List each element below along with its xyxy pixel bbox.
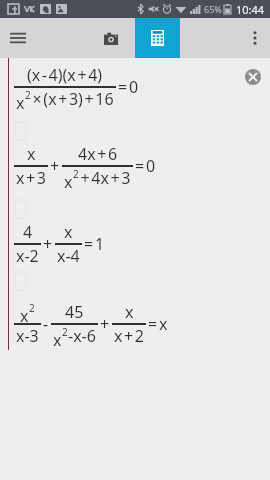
button[interactable]: 4 bbox=[13, 221, 105, 267]
staticText: x bbox=[64, 221, 73, 243]
staticText: 4x + 6 bbox=[78, 143, 118, 165]
staticText: 2 bbox=[25, 88, 31, 102]
staticText: x + 2 bbox=[114, 325, 144, 347]
button[interactable]: x bbox=[13, 301, 168, 347]
staticText: - bbox=[43, 313, 49, 335]
button[interactable]: Clear bbox=[245, 69, 261, 85]
staticText: x + 3 bbox=[16, 167, 46, 189]
staticText: + bbox=[43, 233, 53, 255]
button[interactable]: Calculator bbox=[135, 18, 180, 58]
staticText: x bbox=[125, 301, 134, 323]
staticText: + 4x + 3 bbox=[79, 167, 131, 189]
staticText: 2 bbox=[73, 167, 79, 181]
staticText: = bbox=[118, 76, 128, 98]
staticText: = bbox=[148, 313, 158, 335]
staticText: 65% bbox=[204, 3, 222, 15]
staticText: x-3 bbox=[16, 325, 39, 347]
staticText: x bbox=[53, 329, 62, 351]
button[interactable]: Camera bbox=[90, 18, 135, 58]
staticText: = bbox=[84, 233, 94, 255]
button[interactable]: Menu bbox=[0, 18, 36, 58]
staticText: 10:44 bbox=[236, 2, 265, 17]
staticText: x bbox=[16, 92, 25, 114]
staticText: x bbox=[20, 305, 29, 327]
staticText: x bbox=[27, 143, 36, 165]
staticText: + bbox=[50, 155, 60, 177]
staticText: 2 bbox=[62, 325, 68, 339]
staticText: 2 bbox=[29, 301, 35, 315]
button[interactable]: x bbox=[13, 143, 156, 189]
staticText: × (x + 3) + 16 bbox=[31, 88, 114, 110]
staticText: 4 bbox=[23, 221, 33, 243]
staticText: x-2 bbox=[16, 245, 39, 267]
button[interactable]: More options bbox=[240, 18, 270, 58]
staticText: 45 bbox=[65, 301, 84, 323]
staticText: x-4 bbox=[57, 245, 80, 267]
button[interactable]: (x - 4)(x + 4) bbox=[13, 64, 139, 110]
staticText: 0 bbox=[129, 76, 139, 98]
staticText: 1 bbox=[95, 233, 105, 255]
staticText: = bbox=[135, 155, 145, 177]
staticText: 0 bbox=[146, 155, 156, 177]
staticText: x bbox=[159, 313, 168, 335]
staticText: -x-6 bbox=[68, 325, 96, 347]
staticText: (x - 4)(x + 4) bbox=[27, 64, 103, 86]
staticText: x bbox=[64, 171, 73, 193]
staticText: + bbox=[100, 313, 110, 335]
